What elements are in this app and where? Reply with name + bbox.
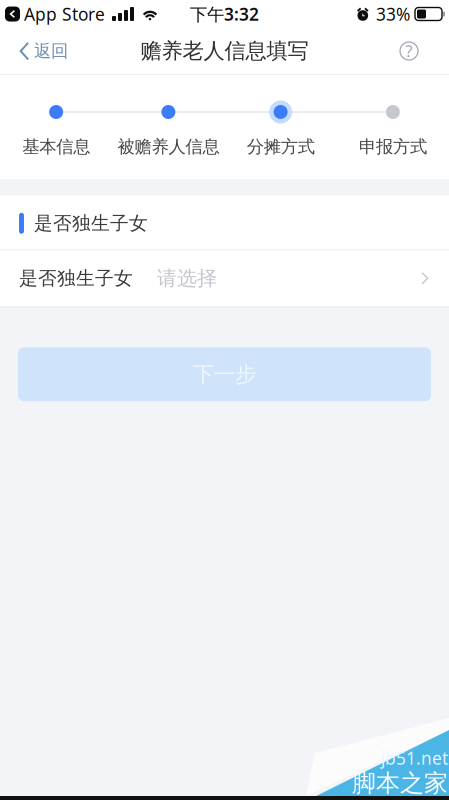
staticText: jb51.net (381, 746, 448, 769)
button[interactable]: 返回 (8, 34, 76, 68)
staticText: 请选择 (157, 266, 217, 291)
staticText: 是否独生子女 (19, 267, 133, 290)
staticText: 赡养老人信息填写 (140, 38, 308, 64)
staticText: 申报方式 (359, 136, 427, 157)
staticText: App Store (24, 2, 105, 25)
staticText: 基本信息 (22, 136, 90, 157)
staticText: 下一步 (193, 361, 256, 387)
staticText: 下午3:32 (190, 2, 259, 25)
button[interactable]: 是否独生子女 (0, 250, 449, 306)
staticText: 脚本之家 (352, 768, 448, 798)
staticText: ? (405, 40, 412, 62)
staticText: 33% (376, 2, 410, 25)
staticText: 返回 (34, 40, 68, 62)
button[interactable]: 下一步 (18, 347, 431, 401)
staticText: 是否独生子女 (34, 212, 148, 235)
staticText: 被赡养人信息 (117, 136, 219, 157)
staticText: 分摊方式 (247, 136, 315, 157)
button[interactable]: 帮助 (390, 36, 441, 66)
